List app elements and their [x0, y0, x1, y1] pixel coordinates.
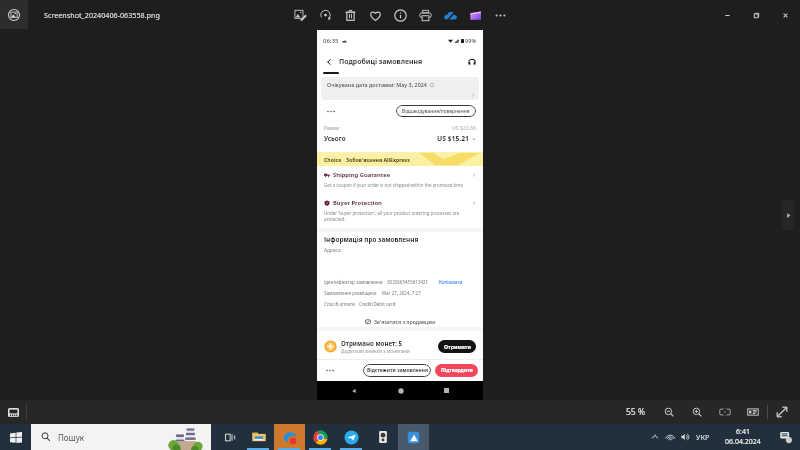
staticText: Отримати: [444, 343, 471, 350]
button[interactable]: Minimize: [713, 1, 742, 29]
staticText: УКР: [696, 432, 710, 442]
button[interactable]: Google Chrome: [305, 424, 336, 450]
staticText: Under 'buyer protection', all your produ…: [324, 210, 476, 222]
button[interactable]: Network: [662, 424, 677, 450]
button[interactable]: Очікувана дата доставки: May 3, 2024: [321, 77, 479, 100]
button[interactable]: Підтвердити: [435, 364, 478, 377]
button[interactable]: OneDrive: [438, 1, 463, 29]
staticText: Credit/Debit card: [359, 301, 396, 307]
staticText: Копіювати: [439, 279, 463, 285]
button[interactable]: Fit to window: [711, 400, 739, 424]
button[interactable]: More options: [324, 105, 337, 117]
staticText: Ідентифікатор замовлення: [324, 279, 383, 285]
button[interactable]: Full screen: [768, 400, 796, 424]
staticText: Відшкодування/повернення: [402, 108, 470, 115]
staticText: US $22.66: [452, 125, 476, 132]
button[interactable]: Filmstrip: [0, 400, 26, 424]
button[interactable]: Speaker app: [367, 424, 398, 450]
staticText: 06:35: [323, 37, 339, 45]
button[interactable]: Video editor: [463, 1, 488, 29]
button[interactable]: Volume: [677, 424, 692, 450]
button[interactable]: Slideshow: [739, 400, 767, 424]
button[interactable]: Отримати: [438, 340, 476, 353]
staticText: 06.04.2024: [725, 437, 761, 447]
staticText: Замовлення розміщено: [324, 290, 377, 296]
button[interactable]: Close: [771, 1, 800, 29]
button[interactable]: Telegram: [336, 424, 367, 450]
button[interactable]: File explorer: [243, 424, 274, 450]
staticText: Buyer Protection: [333, 199, 382, 207]
button[interactable]: Відстежити замовлення: [363, 364, 431, 377]
button[interactable]: Photos app: [0, 0, 28, 29]
button[interactable]: Buyer Protection: [324, 198, 476, 208]
button[interactable]: Info: [388, 1, 413, 29]
staticText: Choice: [324, 156, 342, 163]
button[interactable]: Home: [391, 381, 410, 400]
button[interactable]: Back: [344, 381, 363, 400]
button[interactable]: Зв'язатися з продавцем: [317, 316, 483, 327]
staticText: Подробиці замовлення: [339, 57, 423, 66]
button[interactable]: Notifications: [774, 425, 798, 449]
staticText: Адреса: [324, 247, 341, 254]
staticText: US $15.21: [437, 134, 469, 143]
button[interactable]: 6:41: [725, 427, 761, 447]
staticText: Усього: [324, 134, 346, 143]
button[interactable]: Print: [413, 1, 438, 29]
staticText: Підтвердити: [441, 367, 473, 374]
button[interactable]: More: [323, 364, 336, 376]
button[interactable]: More: [488, 1, 513, 29]
staticText: 3032665455613421: [387, 279, 429, 285]
button[interactable]: Show hidden icons: [647, 424, 662, 450]
button[interactable]: Shipping Guarantee: [324, 170, 476, 180]
button[interactable]: Zoom out: [655, 400, 683, 424]
button[interactable]: Start: [0, 424, 31, 450]
staticText: 99%: [465, 37, 477, 45]
button[interactable]: Recents: [437, 381, 456, 400]
button[interactable]: Support: [466, 56, 477, 67]
button[interactable]: Rotate: [313, 1, 338, 29]
staticText: Get a coupon if your order is not shippe…: [324, 182, 463, 188]
staticText: Зобов'язання AliExpress: [346, 156, 410, 163]
staticText: Додаткові знижки з монетами: [341, 348, 410, 354]
staticText: Отримано монет: 5: [341, 339, 403, 347]
button[interactable]: УКР: [696, 432, 710, 442]
staticText: Очікувана дата доставки: May 3, 2024: [327, 81, 427, 88]
button[interactable]: Пошук: [31, 424, 211, 450]
staticText: Screenshot_20240406-063558.png: [44, 10, 160, 20]
staticText: Зв'язатися з продавцем: [374, 318, 436, 325]
button[interactable]: Копіювати: [439, 279, 463, 285]
staticText: Спосіб оплати: [324, 301, 355, 307]
button[interactable]: Відшкодування/повернення: [396, 105, 476, 117]
staticText: Mar 27, 2024, 7:27: [382, 290, 421, 296]
button[interactable]: Back: [323, 56, 334, 67]
button[interactable]: Microsoft Edge: [274, 424, 305, 450]
button[interactable]: Maximize: [742, 1, 771, 29]
button[interactable]: Photos: [398, 424, 429, 450]
staticText: Shipping Guarantee: [333, 171, 391, 179]
button[interactable]: Next image: [782, 200, 794, 230]
staticText: 6:41: [736, 427, 750, 437]
staticText: Разом: [324, 125, 340, 132]
staticText: Інформація про замовлення: [324, 235, 419, 244]
button[interactable]: Task view: [218, 424, 243, 450]
button[interactable]: Favorite: [363, 1, 388, 29]
staticText: Відстежити замовлення: [367, 367, 428, 374]
button[interactable]: Zoom in: [683, 400, 711, 424]
staticText: 55 %: [626, 406, 645, 418]
staticText: Пошук: [58, 432, 85, 443]
button[interactable]: Edit: [288, 1, 313, 29]
button[interactable]: Delete: [338, 1, 363, 29]
